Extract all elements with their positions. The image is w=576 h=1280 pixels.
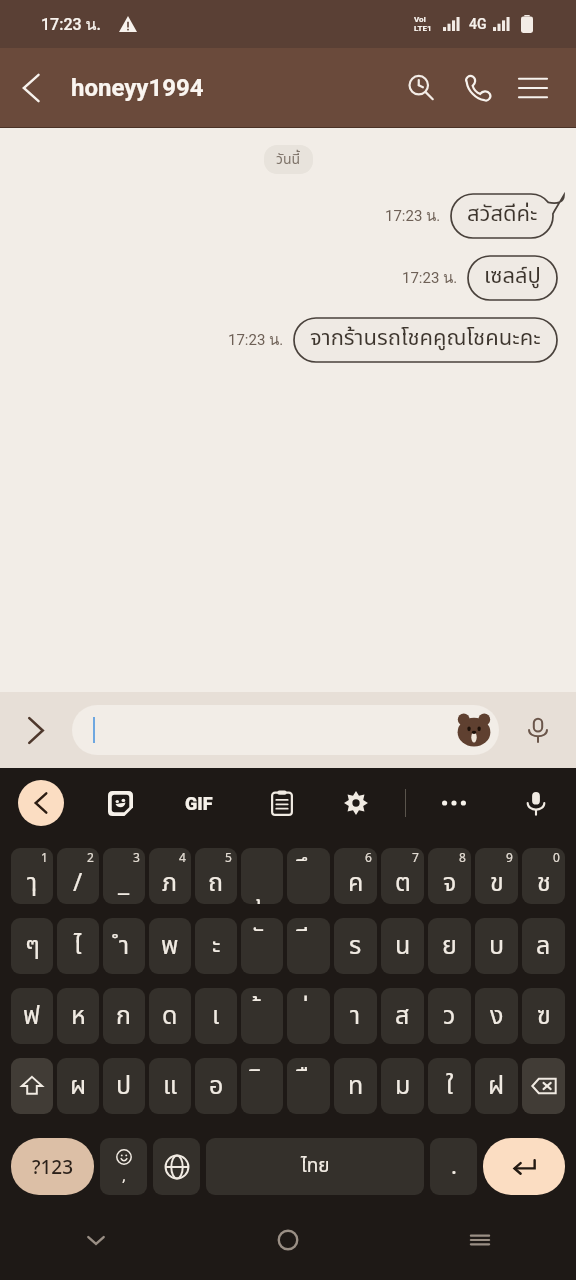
button[interactable]: แ (149, 1058, 191, 1114)
staticText: ฝ (488, 1067, 505, 1105)
button[interactable]: 2 (57, 848, 99, 904)
button[interactable]: ื (287, 1058, 330, 1114)
button[interactable]: ส (381, 988, 424, 1044)
button[interactable]: ้ (241, 988, 283, 1044)
button[interactable]: Clipboard (258, 768, 306, 838)
button[interactable]: ี (287, 918, 330, 974)
button[interactable]: ม (381, 1058, 424, 1114)
staticText: . (451, 1150, 457, 1180)
button[interactable]: จากร้านรถโชคคูณโชคนะคะ (294, 318, 557, 362)
button[interactable]: ใ (428, 1058, 471, 1114)
button[interactable]: ุ (241, 848, 283, 904)
staticText: , (122, 1165, 127, 1185)
button[interactable]: ห (57, 988, 99, 1044)
button[interactable]: 1 (11, 848, 53, 904)
button[interactable]: น (381, 918, 424, 974)
button[interactable]: ฃ (522, 988, 565, 1044)
button[interactable]: ั (241, 918, 283, 974)
staticText: 6 (365, 849, 372, 865)
button[interactable]: 0 (522, 848, 565, 904)
button[interactable]: 9 (475, 848, 518, 904)
button[interactable]: ผ (57, 1058, 99, 1114)
staticText: GIF (185, 793, 213, 814)
button[interactable]: 6 (334, 848, 377, 904)
staticText: LTE1 (414, 24, 432, 33)
button[interactable]: ฟ (11, 988, 53, 1044)
button[interactable]: ล (522, 918, 565, 974)
button[interactable]: Back (0, 48, 56, 128)
staticText: ว (443, 997, 456, 1035)
button[interactable]: ำ (103, 918, 145, 974)
button[interactable]: Change language (153, 1138, 200, 1195)
button[interactable]: Search messages (393, 48, 449, 128)
button[interactable]: Home (261, 1213, 315, 1267)
button[interactable]: ร (334, 918, 377, 974)
button[interactable]: GIF keyboard (175, 768, 223, 838)
button[interactable]: Recents (453, 1213, 507, 1267)
staticText: ภ (162, 864, 178, 902)
button[interactable]: Settings (332, 768, 380, 838)
button[interactable]: Hide keyboard (69, 1213, 123, 1267)
button[interactable]: เซลล์ปู (468, 256, 557, 300)
staticText: เซลล์ปู (484, 260, 541, 293)
button[interactable]: 7 (381, 848, 424, 904)
staticText: 17:23 น. (41, 12, 101, 37)
button[interactable]: ง (475, 988, 518, 1044)
button[interactable]: ด (149, 988, 191, 1044)
button[interactable]: 8 (428, 848, 471, 904)
button[interactable]: , (100, 1138, 147, 1195)
staticText: 8 (459, 849, 466, 865)
button[interactable]: ก (103, 988, 145, 1044)
button[interactable]: ๆ (11, 918, 53, 974)
button[interactable]: Stickers (455, 711, 493, 749)
button[interactable]: ฝ (475, 1058, 518, 1114)
staticText: ข (490, 864, 504, 902)
staticText: ล (536, 927, 551, 965)
button[interactable]: Enter (483, 1138, 565, 1195)
button[interactable]: ไ (57, 918, 99, 974)
staticText: จ (443, 864, 457, 902)
button[interactable]: ิ (241, 1058, 283, 1114)
button[interactable]: บ (475, 918, 518, 974)
button[interactable]: สวัสดีค่ะ (451, 194, 564, 238)
staticText: ถ (208, 864, 224, 902)
button[interactable]: ท (334, 1058, 377, 1114)
staticText: VoI (414, 15, 426, 24)
button[interactable]: ย (428, 918, 471, 974)
button[interactable]: ึ (287, 848, 330, 904)
staticText: 17:23 น. (385, 204, 441, 228)
button[interactable]: Menu (505, 48, 561, 128)
button[interactable]: วันนี้ (276, 149, 301, 170)
button[interactable]: Shift (11, 1058, 53, 1114)
button[interactable]: ะ (195, 918, 237, 974)
button[interactable]: ว (428, 988, 471, 1044)
button[interactable]: พ (149, 918, 191, 974)
button[interactable]: More options (430, 768, 478, 838)
button[interactable]: Call (449, 48, 505, 128)
button[interactable]: ?123 (11, 1138, 94, 1195)
staticText: ๅ (27, 864, 38, 902)
button[interactable]: . (430, 1138, 477, 1195)
staticText: 3 (133, 849, 140, 865)
staticText: 2 (87, 849, 94, 865)
staticText: อ (209, 1067, 224, 1105)
button[interactable]: ไทย (206, 1138, 424, 1195)
button[interactable]: ป (103, 1058, 145, 1114)
staticText: แ (163, 1067, 178, 1105)
button[interactable]: Back (18, 780, 64, 826)
button[interactable]: เ (195, 988, 237, 1044)
button[interactable]: 3 (103, 848, 145, 904)
button[interactable]: Show more options (0, 692, 72, 768)
button[interactable]: 4 (149, 848, 191, 904)
button[interactable]: Stickers (72, 705, 499, 755)
button[interactable]: 5 (195, 848, 237, 904)
button[interactable]: Backspace (522, 1058, 565, 1114)
staticText: น (395, 927, 411, 965)
button[interactable]: ่ (287, 988, 330, 1044)
button[interactable]: า (334, 988, 377, 1044)
staticText: ไทย (301, 1152, 330, 1181)
button[interactable]: Voice input (512, 768, 560, 838)
button[interactable]: Voice message (499, 692, 576, 768)
button[interactable]: Stickers (96, 768, 144, 838)
button[interactable]: อ (195, 1058, 237, 1114)
